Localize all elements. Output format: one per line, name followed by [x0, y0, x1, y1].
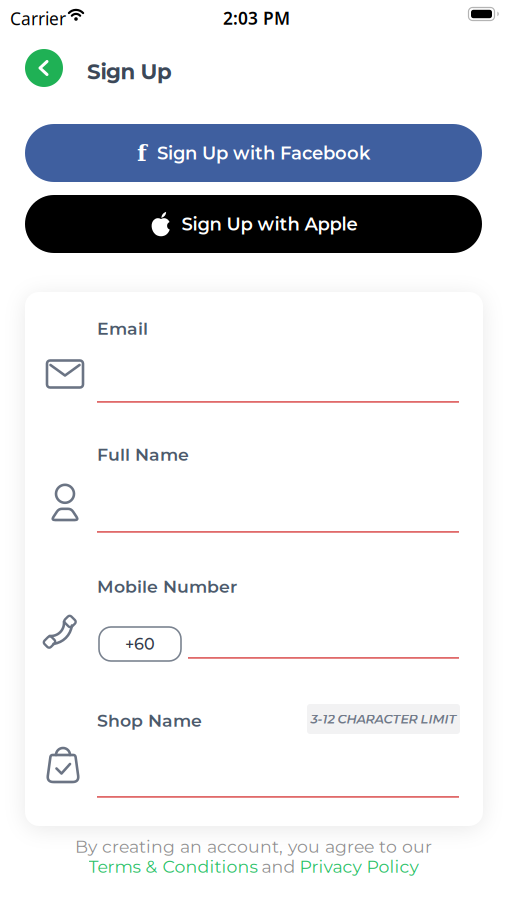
staticText: Privacy Policy [299, 856, 418, 877]
staticText: Terms & Conditions [88, 856, 257, 877]
staticText: Carrier [10, 7, 66, 30]
button[interactable]: +60 [99, 627, 181, 661]
button[interactable]: Terms & Conditions [88, 856, 257, 877]
staticText: Sign Up with Facebook [157, 142, 370, 164]
button[interactable]: Back [25, 49, 63, 87]
staticText: By creating an account, you agree to our [75, 836, 432, 857]
staticText: Sign Up [87, 58, 172, 84]
staticText: 3-12 CHARACTER LIMIT [310, 711, 456, 727]
staticText: and [261, 856, 295, 877]
staticText: 2:03 PM [223, 6, 290, 29]
staticText: Shop Name [97, 710, 202, 731]
staticText: Mobile Number [97, 576, 237, 597]
staticText: Sign Up with Apple [181, 213, 357, 235]
staticText: Full Name [97, 444, 189, 465]
button[interactable]: Privacy Policy [299, 856, 418, 877]
button[interactable]: f [25, 124, 482, 182]
staticText: Email [97, 318, 148, 339]
staticText: +60 [125, 634, 155, 654]
staticText: f [137, 140, 147, 166]
button[interactable]: Sign Up with Apple [25, 195, 482, 253]
